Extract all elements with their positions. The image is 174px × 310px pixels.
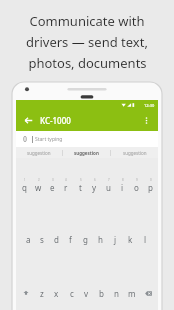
staticText: y: [92, 182, 97, 193]
button[interactable]: suggestion: [63, 147, 110, 158]
staticText: b: [99, 288, 104, 299]
staticText: Start typing: [35, 136, 63, 143]
button[interactable]: d: [49, 212, 63, 266]
staticText: suggestion: [27, 150, 51, 156]
button[interactable]: 4: [59, 158, 73, 212]
staticText: 8: [122, 178, 124, 182]
button[interactable]: l: [138, 212, 153, 266]
button[interactable]: j: [108, 212, 123, 266]
staticText: c: [70, 288, 74, 299]
staticText: 4: [65, 178, 67, 182]
staticText: 12:30: [144, 103, 155, 108]
button[interactable]: 6: [87, 158, 101, 212]
button[interactable]: m: [124, 266, 139, 310]
staticText: 7: [108, 178, 110, 182]
button[interactable]: suggestion: [111, 147, 158, 158]
staticText: 0: [150, 178, 152, 182]
staticText: r: [64, 182, 68, 193]
staticText: Communicate with: [29, 12, 145, 30]
button[interactable]: s: [35, 212, 49, 266]
staticText: h: [98, 234, 103, 245]
staticText: l: [144, 234, 147, 245]
staticText: 5: [80, 178, 82, 182]
staticText: p: [148, 182, 153, 193]
staticText: suggestion: [74, 150, 99, 156]
staticText: w: [35, 182, 42, 193]
button[interactable]: h: [93, 212, 108, 266]
staticText: d: [54, 234, 59, 245]
staticText: q: [22, 182, 27, 193]
button[interactable]: 8: [115, 158, 129, 212]
staticText: f: [69, 234, 72, 245]
button[interactable]: 7: [101, 158, 115, 212]
staticText: x: [54, 288, 59, 299]
button[interactable]: 2: [31, 158, 45, 212]
staticText: k: [128, 234, 133, 245]
button[interactable]: Shift: [17, 266, 34, 310]
button[interactable]: 5: [73, 158, 87, 212]
staticText: n: [114, 288, 119, 299]
button[interactable]: c: [64, 266, 79, 310]
button[interactable]: v: [79, 266, 94, 310]
staticText: KC-1000: [40, 115, 71, 126]
staticText: o: [134, 182, 139, 193]
staticText: a: [26, 234, 31, 245]
staticText: z: [40, 288, 44, 299]
staticText: 9: [136, 178, 138, 182]
button[interactable]: 3: [45, 158, 59, 212]
button[interactable]: 9: [129, 158, 143, 212]
button[interactable]: Attach file: [20, 134, 30, 144]
button[interactable]: x: [49, 266, 64, 310]
staticText: 2: [38, 178, 40, 182]
button[interactable]: f: [63, 212, 78, 266]
staticText: m: [128, 288, 136, 299]
staticText: g: [83, 234, 88, 245]
button[interactable]: g: [78, 212, 93, 266]
button[interactable]: b: [94, 266, 109, 310]
button[interactable]: 0: [143, 158, 157, 212]
staticText: suggestion: [123, 150, 147, 156]
staticText: v: [84, 288, 89, 299]
staticText: photos, documents: [28, 54, 147, 72]
button[interactable]: a: [21, 212, 35, 266]
button[interactable]: n: [109, 266, 124, 310]
staticText: i: [121, 182, 124, 193]
button[interactable]: suggestion: [16, 147, 62, 158]
staticText: 3: [52, 178, 54, 182]
staticText: u: [106, 182, 111, 193]
staticText: 6: [94, 178, 96, 182]
button[interactable]: z: [34, 266, 49, 310]
button[interactable]: More options: [139, 113, 153, 127]
button[interactable]: Backspace: [139, 266, 157, 310]
staticText: j: [114, 234, 117, 245]
staticText: t: [79, 182, 82, 193]
staticText: s: [40, 234, 44, 245]
button[interactable]: Back: [21, 113, 35, 127]
button[interactable]: k: [123, 212, 138, 266]
staticText: 1: [24, 178, 26, 182]
staticText: drivers — send text,: [26, 33, 148, 51]
button[interactable]: 1: [17, 158, 31, 212]
staticText: e: [50, 182, 55, 193]
